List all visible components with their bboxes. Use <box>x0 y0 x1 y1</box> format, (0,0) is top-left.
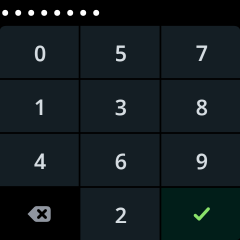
staticText: 7 <box>196 39 208 67</box>
button[interactable]: 4 <box>0 134 79 186</box>
button[interactable]: 3 <box>80 80 160 132</box>
staticText: 9 <box>196 147 208 175</box>
button[interactable]: Delete <box>0 188 79 240</box>
staticText: 5 <box>115 39 127 67</box>
staticText: 4 <box>34 147 46 175</box>
button[interactable]: 2 <box>80 188 160 240</box>
button[interactable]: 5 <box>80 26 160 78</box>
button[interactable]: 6 <box>80 134 160 186</box>
button[interactable]: 9 <box>161 134 240 186</box>
button[interactable]: Confirm <box>161 188 240 240</box>
button[interactable]: 8 <box>161 80 240 132</box>
button[interactable]: 7 <box>161 26 240 78</box>
button[interactable]: 1 <box>0 80 79 132</box>
staticText: 1 <box>34 93 46 121</box>
staticText: 2 <box>115 201 127 229</box>
staticText: 3 <box>115 93 127 121</box>
button[interactable]: 0 <box>0 26 79 78</box>
staticText: 6 <box>115 147 127 175</box>
staticText: 0 <box>34 39 46 67</box>
staticText: 8 <box>196 93 208 121</box>
